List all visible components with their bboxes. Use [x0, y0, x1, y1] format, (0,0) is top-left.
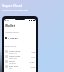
staticText: -4.50: [31, 51, 35, 53]
staticText: Available balance: [5, 31, 19, 33]
staticText: Wallet: [5, 24, 16, 28]
button[interactable]: Metro Transit: [4, 54, 36, 59]
staticText: -2.75: [31, 56, 35, 58]
staticText: Mon: [9, 67, 13, 69]
button[interactable]: Payroll: [4, 59, 36, 64]
staticText: Book Shop: [9, 65, 19, 67]
button[interactable]: Coffee House: [4, 49, 36, 54]
staticText: 9:41: [5, 19, 9, 22]
button[interactable]: Book Shop: [4, 64, 36, 69]
staticText: Payroll: [9, 60, 15, 62]
staticText: Recent activity: [5, 45, 17, 47]
staticText: Today, 8:04: [9, 57, 17, 59]
staticText: Coffee House: [9, 50, 21, 52]
staticText: Today, 9:12: [9, 52, 17, 54]
staticText: Pay in a tap. Track every cent.: [2, 9, 29, 12]
staticText: -18.20: [30, 66, 35, 68]
staticText: 1,482.60: [8, 36, 18, 39]
staticText: Metro Transit: [9, 55, 21, 57]
staticText: +1,200: [29, 61, 35, 63]
staticText: Yesterday: [9, 62, 16, 64]
staticText: Super Final: [2, 3, 22, 8]
